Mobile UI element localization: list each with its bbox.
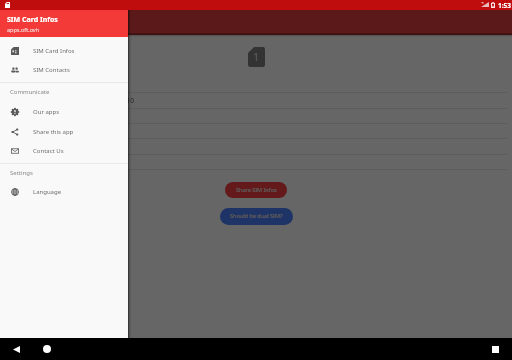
staticText: Country ISO <box>6 111 43 120</box>
staticText: apps.oft.ovh <box>7 26 40 33</box>
button[interactable]: Back <box>8 338 24 360</box>
button[interactable]: SIM serial number : 894401028890116010 <box>0 94 512 107</box>
staticText: Share this app <box>33 128 74 136</box>
button[interactable]: Should be dual SIM? <box>220 208 293 225</box>
staticText: SIM Contacts <box>33 66 70 74</box>
button[interactable]: Recents <box>487 338 503 360</box>
button[interactable]: Share SIM Infos <box>225 182 287 198</box>
staticText: Operator name <box>6 81 54 90</box>
staticText: 1:53 <box>498 1 511 10</box>
staticText: Phone number <box>6 158 52 167</box>
button[interactable]: Share this app <box>0 122 128 141</box>
staticText: Share SIM Infos <box>236 186 277 193</box>
button[interactable]: Country ISO <box>0 109 512 122</box>
button[interactable]: SIM state <box>0 125 512 138</box>
button[interactable]: Language <box>0 182 128 201</box>
staticText: Communicate <box>10 88 50 96</box>
button[interactable]: Contact Us <box>0 141 128 160</box>
staticText: SIM serial number : 894401028890116010 <box>6 96 135 105</box>
button[interactable]: Phone number <box>0 156 512 169</box>
staticText: Settings <box>10 169 33 177</box>
staticText: Should be dual SIM? <box>230 212 283 219</box>
button[interactable]: Home <box>39 338 55 360</box>
staticText: SIM state <box>6 127 35 136</box>
staticText: Our apps <box>33 108 60 116</box>
button[interactable]: Open navigation drawer <box>8 16 21 29</box>
staticText: Contact Us <box>33 147 64 155</box>
staticText: Network type <box>6 142 48 151</box>
staticText: SIM Card Infos <box>29 18 86 29</box>
button[interactable]: SIM Card Infos <box>0 41 128 60</box>
button[interactable]: Our apps <box>0 102 128 121</box>
button[interactable]: SIM Contacts <box>0 60 128 79</box>
staticText: SIM Card Infos <box>7 15 58 25</box>
staticText: SIM Card Infos <box>33 47 75 55</box>
button[interactable]: Network type <box>0 140 512 153</box>
button[interactable]: Operator name <box>0 79 512 92</box>
staticText: 1 <box>253 49 260 64</box>
staticText: Language <box>33 188 62 196</box>
